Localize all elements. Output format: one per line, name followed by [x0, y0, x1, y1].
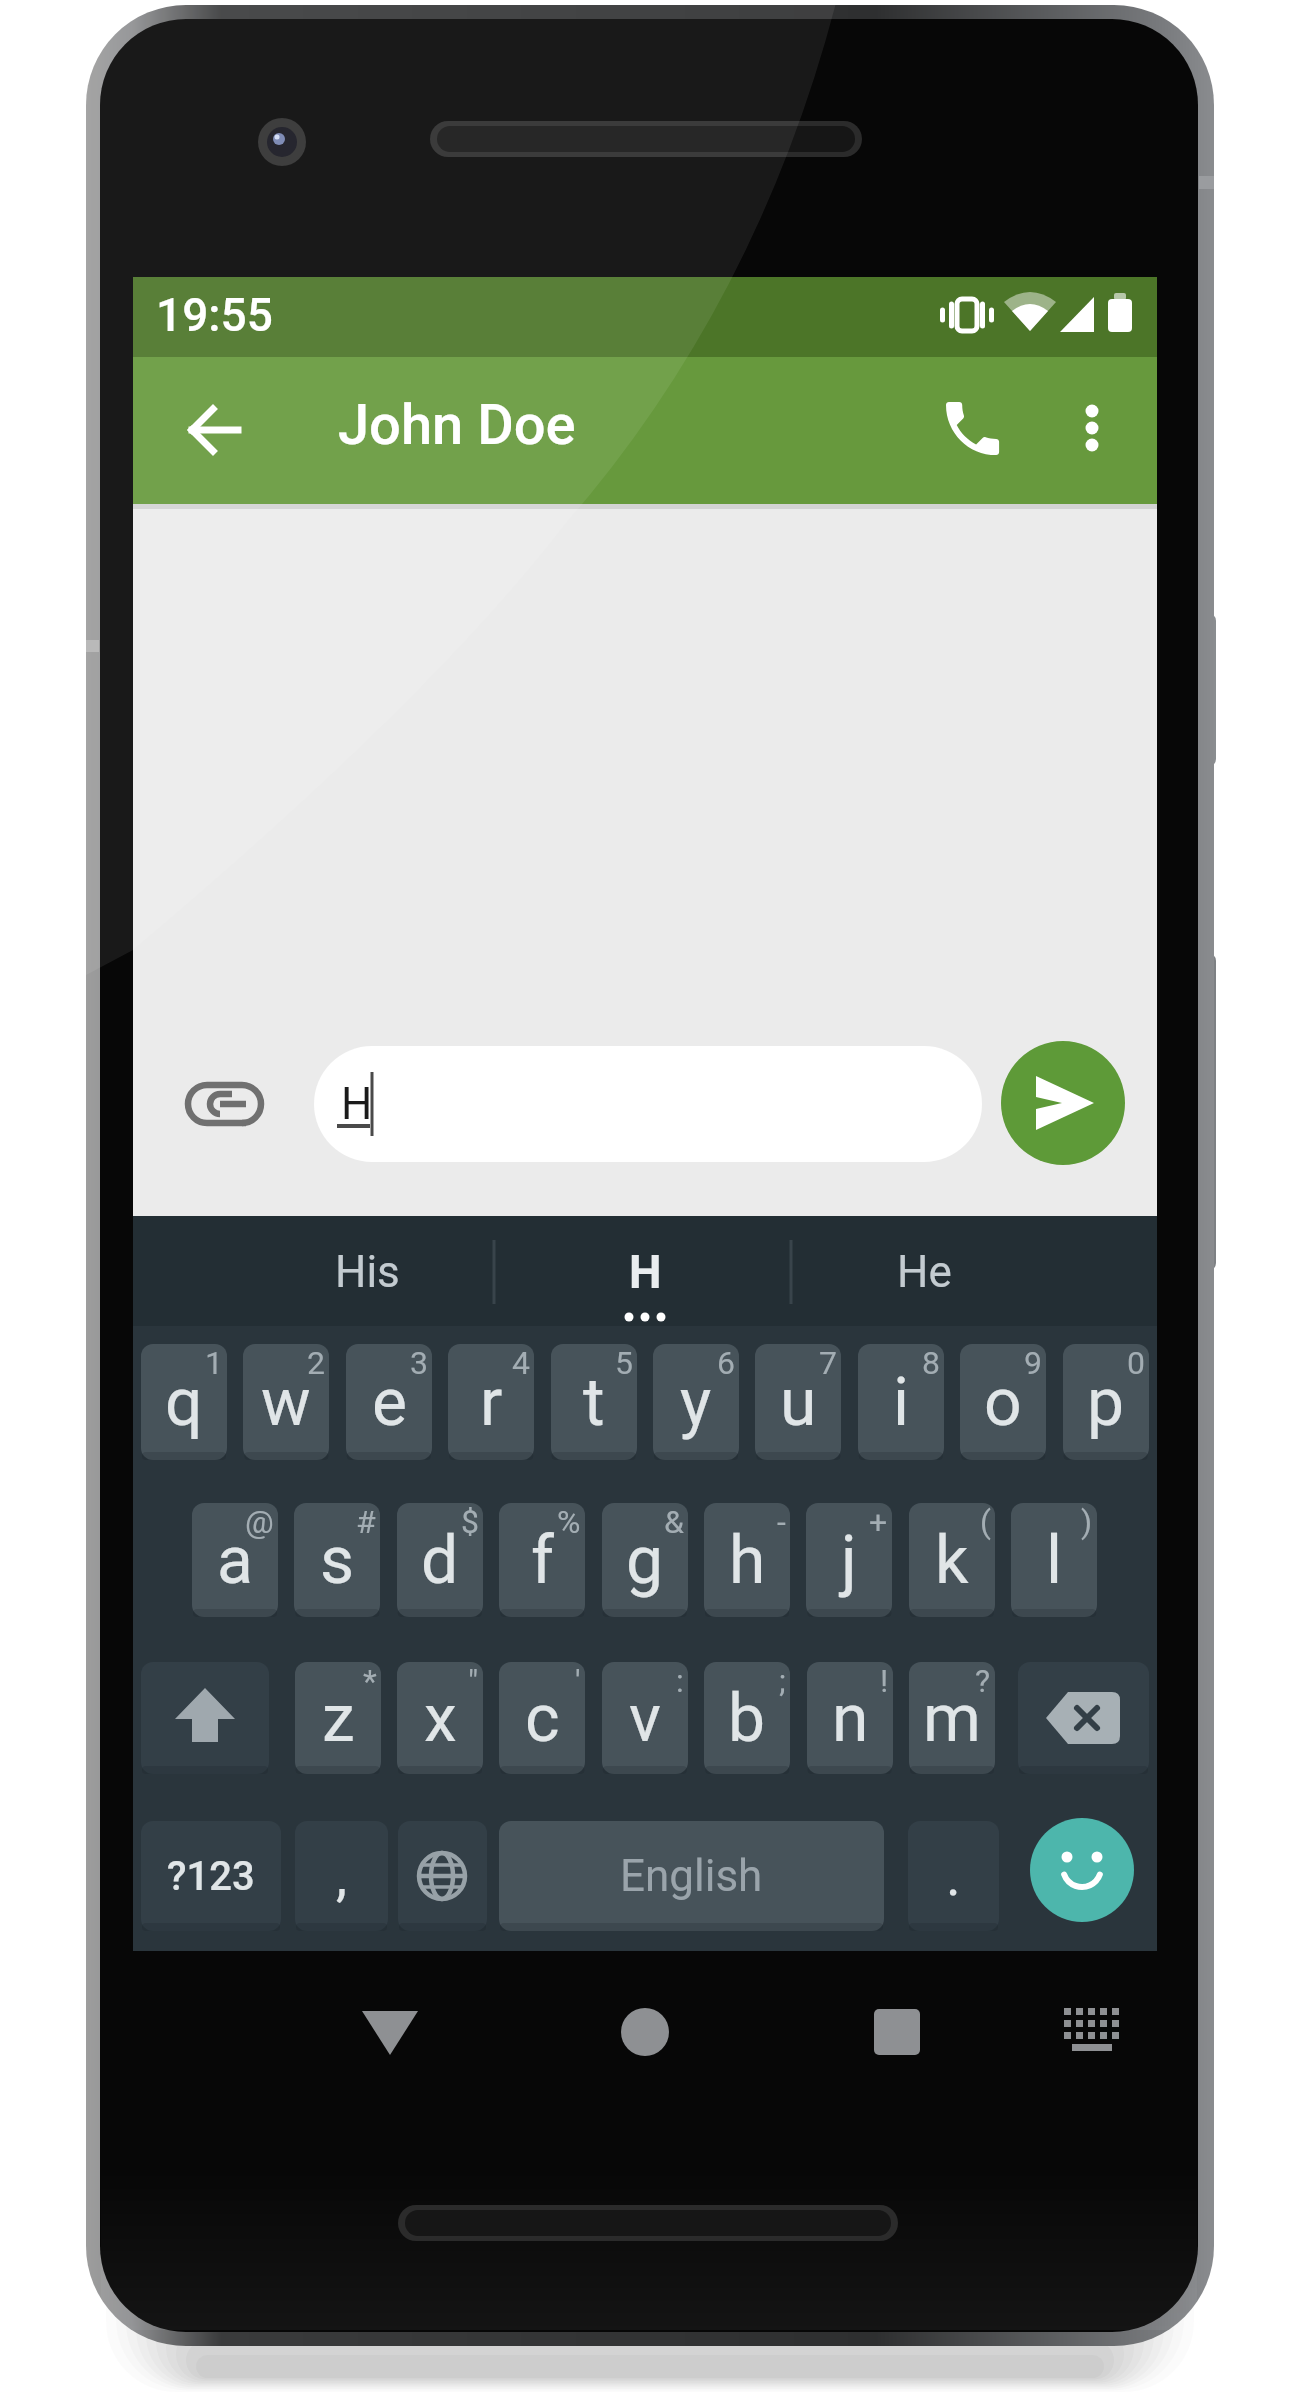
button[interactable]: c — [499, 1662, 585, 1774]
button[interactable] — [314, 1046, 982, 1162]
button[interactable]: b — [704, 1662, 790, 1774]
button[interactable]: His — [267, 1222, 467, 1322]
button[interactable]: k — [909, 1503, 995, 1617]
staticText: 7 — [819, 1344, 837, 1382]
staticText: 6 — [717, 1344, 735, 1382]
staticText: 0 — [1127, 1344, 1145, 1382]
staticText: m — [923, 1680, 981, 1757]
button[interactable] — [1030, 1818, 1134, 1922]
staticText: $ — [461, 1503, 479, 1541]
staticText: ) — [1081, 1503, 1093, 1541]
staticText: ; — [779, 1662, 786, 1700]
button[interactable]: H — [545, 1222, 745, 1322]
staticText: His — [335, 1246, 400, 1298]
button[interactable]: q — [141, 1344, 227, 1460]
button[interactable] — [330, 1980, 450, 2084]
staticText: % — [557, 1503, 581, 1541]
button[interactable]: h — [704, 1503, 790, 1617]
button[interactable] — [925, 385, 1020, 475]
button[interactable]: w — [243, 1344, 329, 1460]
button[interactable]: r — [448, 1344, 534, 1460]
button[interactable]: l — [1011, 1503, 1097, 1617]
staticText: b — [728, 1680, 766, 1757]
button[interactable]: e — [346, 1344, 432, 1460]
staticText: x — [424, 1680, 457, 1757]
button[interactable] — [1055, 385, 1130, 475]
staticText: @ — [245, 1503, 274, 1541]
staticText: u — [780, 1364, 817, 1441]
button[interactable]: p — [1063, 1344, 1149, 1460]
button[interactable] — [837, 1980, 957, 2084]
staticText: y — [680, 1364, 712, 1441]
staticText: e — [372, 1364, 407, 1441]
button[interactable] — [1001, 1041, 1125, 1165]
staticText: H — [629, 1245, 662, 1299]
button[interactable] — [398, 1821, 487, 1931]
staticText: 5 — [615, 1344, 633, 1382]
button[interactable]: s — [294, 1503, 380, 1617]
button[interactable]: , — [295, 1821, 388, 1931]
button[interactable]: . — [908, 1821, 999, 1931]
staticText: 19:55 — [156, 288, 273, 342]
staticText: v — [629, 1680, 661, 1757]
button[interactable]: m — [909, 1662, 995, 1774]
staticText: i — [893, 1364, 910, 1441]
button[interactable]: y — [653, 1344, 739, 1460]
button[interactable]: z — [295, 1662, 381, 1774]
button[interactable] — [1031, 1980, 1151, 2084]
staticText: o — [984, 1364, 1022, 1441]
staticText: q — [165, 1364, 203, 1441]
button[interactable]: f — [499, 1503, 585, 1617]
button[interactable]: a — [192, 1503, 278, 1617]
staticText: . — [946, 1843, 961, 1909]
staticText: w — [261, 1364, 311, 1441]
staticText: * — [363, 1662, 377, 1700]
staticText: s — [320, 1522, 355, 1599]
staticText: p — [1087, 1364, 1125, 1441]
staticText: r — [480, 1364, 503, 1441]
button[interactable] — [141, 1662, 269, 1774]
button[interactable]: o — [960, 1344, 1046, 1460]
staticText: a — [217, 1522, 253, 1599]
staticText: English — [620, 1850, 763, 1902]
staticText: : — [676, 1662, 684, 1700]
button[interactable]: d — [397, 1503, 483, 1617]
staticText: 2 — [307, 1344, 325, 1382]
staticText: ! — [880, 1662, 889, 1700]
staticText: He — [897, 1246, 952, 1298]
staticText: , — [336, 1843, 348, 1909]
staticText: " — [468, 1662, 479, 1700]
staticText: j — [841, 1522, 857, 1599]
staticText: l — [1046, 1522, 1063, 1599]
staticText: 3 — [410, 1344, 428, 1382]
staticText: g — [626, 1522, 664, 1599]
button[interactable]: English — [499, 1821, 884, 1931]
staticText: # — [356, 1503, 376, 1541]
staticText: h — [729, 1522, 766, 1599]
staticText: ( — [980, 1503, 991, 1541]
button[interactable] — [185, 1065, 265, 1145]
button[interactable]: x — [397, 1662, 483, 1774]
button[interactable] — [170, 392, 262, 468]
staticText: John Doe — [338, 392, 576, 458]
staticText: k — [935, 1522, 969, 1599]
button[interactable]: n — [807, 1662, 893, 1774]
staticText: n — [832, 1680, 869, 1757]
button[interactable] — [585, 1980, 705, 2084]
button[interactable] — [1018, 1662, 1149, 1774]
staticText: + — [869, 1503, 888, 1541]
staticText: ?123 — [167, 1853, 255, 1900]
button[interactable]: u — [755, 1344, 841, 1460]
button[interactable]: j — [806, 1503, 892, 1617]
button[interactable]: g — [602, 1503, 688, 1617]
staticText: c — [525, 1680, 560, 1757]
button[interactable]: i — [858, 1344, 944, 1460]
button[interactable]: v — [602, 1662, 688, 1774]
staticText: d — [421, 1522, 459, 1599]
button[interactable]: ?123 — [141, 1821, 281, 1931]
staticText: 4 — [512, 1344, 530, 1382]
staticText: & — [664, 1503, 684, 1541]
button[interactable]: He — [824, 1222, 1024, 1322]
staticText: f — [531, 1522, 554, 1599]
button[interactable]: t — [551, 1344, 637, 1460]
